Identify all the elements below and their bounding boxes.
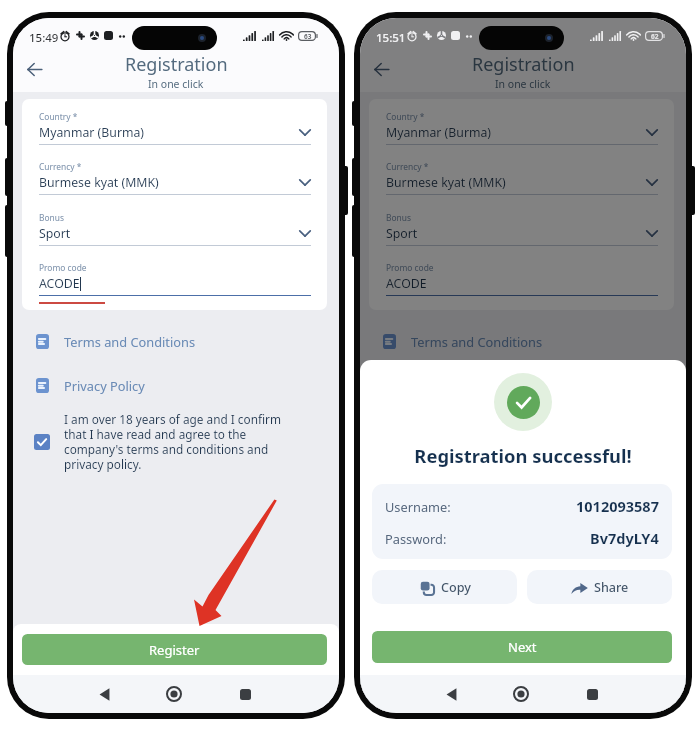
staticText: Promo code xyxy=(39,262,87,273)
staticText: Password: xyxy=(385,530,447,547)
button[interactable]: Back xyxy=(90,680,118,708)
staticText: Myanmar (Burma) xyxy=(386,124,492,141)
button[interactable]: Terms and Conditions xyxy=(36,333,196,350)
button[interactable]: Home xyxy=(507,680,535,708)
staticText: Bonus xyxy=(386,212,411,223)
staticText: Terms and Conditions xyxy=(411,333,543,350)
staticText: 63 xyxy=(304,32,312,41)
button[interactable]: Recents xyxy=(231,680,259,708)
button[interactable]: Register xyxy=(22,634,327,665)
button[interactable]: Privacy Policy xyxy=(36,377,145,394)
staticText: Registration xyxy=(125,52,228,77)
staticText: Register xyxy=(149,641,200,659)
staticText: In one click xyxy=(495,77,551,91)
staticText: Bv7dyLY4 xyxy=(590,528,659,548)
button[interactable]: I am over 18 years of age and I confirm … xyxy=(381,411,656,472)
staticText: Registration successful! xyxy=(360,443,686,468)
button[interactable]: Home xyxy=(507,680,535,708)
staticText: I am over 18 years of age and I confirm … xyxy=(411,411,635,472)
staticText: Promo code xyxy=(386,262,434,273)
button[interactable]: Copy xyxy=(372,570,517,604)
staticText: Currency * xyxy=(39,161,82,172)
staticText: Bonus xyxy=(39,212,64,223)
staticText: Currency * xyxy=(386,161,429,172)
staticText: I am over 18 years of age and I confirm … xyxy=(64,411,288,472)
button[interactable]: Recents xyxy=(578,680,606,708)
button[interactable]: Back xyxy=(437,680,465,708)
staticText: Share xyxy=(594,579,629,596)
staticText: Burmese kyat (MMK) xyxy=(386,174,506,191)
staticText: Copy xyxy=(441,579,471,596)
staticText: Sport xyxy=(386,225,418,242)
button[interactable]: Next xyxy=(372,631,672,663)
staticText: Registration xyxy=(472,52,575,77)
staticText: Terms and Conditions xyxy=(64,333,196,350)
staticText: Country * xyxy=(386,111,425,122)
button[interactable]: Share xyxy=(527,570,672,604)
staticText: 1012093587 xyxy=(576,496,659,516)
staticText: ACODE xyxy=(386,275,427,292)
button[interactable]: Back xyxy=(367,55,396,84)
staticText: Register xyxy=(496,641,547,659)
button[interactable]: Terms and Conditions xyxy=(383,333,543,350)
staticText: Country * xyxy=(39,111,78,122)
button[interactable]: Back xyxy=(437,680,465,708)
staticText: Sport xyxy=(39,225,71,242)
staticText: Privacy Policy xyxy=(64,377,145,394)
staticText: 15:49 xyxy=(29,30,59,46)
staticText: In one click xyxy=(148,77,204,91)
button[interactable]: I am over 18 years of age and I confirm … xyxy=(34,411,309,472)
button[interactable]: Register xyxy=(369,634,674,665)
button[interactable]: Home xyxy=(160,680,188,708)
staticText: 15:51 xyxy=(376,30,406,46)
staticText: Myanmar (Burma) xyxy=(39,124,145,141)
staticText: Username: xyxy=(385,498,451,515)
button[interactable]: Back xyxy=(20,55,49,84)
button[interactable]: Recents xyxy=(578,680,606,708)
staticText: ACODE xyxy=(39,275,80,292)
staticText: 62 xyxy=(651,32,659,41)
staticText: Burmese kyat (MMK) xyxy=(39,174,159,191)
staticText: Next xyxy=(508,638,537,656)
